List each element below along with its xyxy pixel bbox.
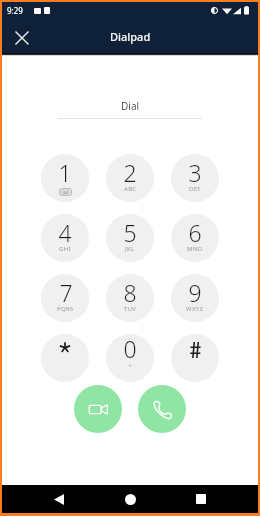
staticText: WXYZ — [186, 305, 204, 313]
staticText: GHI — [59, 245, 71, 253]
staticText: TUV — [124, 305, 137, 313]
staticText: 7 — [59, 277, 73, 308]
staticText: 1 — [58, 157, 72, 188]
button[interactable]: 2 — [106, 154, 154, 202]
staticText: 0 — [123, 334, 137, 364]
staticText: ABC — [124, 185, 137, 193]
button[interactable]: Close — [5, 21, 39, 55]
button[interactable]: Video call — [74, 385, 122, 433]
button[interactable]: 3 — [171, 154, 219, 202]
button[interactable]: 0 — [106, 334, 154, 382]
button[interactable]: 1 — [41, 154, 89, 202]
staticText: Dialpad — [110, 29, 151, 44]
button[interactable]: Home — [116, 485, 144, 513]
button[interactable]: 4 — [41, 214, 89, 262]
staticText: 2 — [123, 157, 137, 188]
button[interactable] — [171, 334, 219, 382]
staticText: DEF — [189, 185, 201, 193]
staticText: PQRS — [57, 305, 74, 313]
staticText: Dial — [121, 99, 140, 113]
staticText: 6 — [188, 217, 202, 248]
button[interactable]: Dial — [58, 90, 202, 118]
staticText: 3 — [188, 157, 202, 188]
button[interactable]: 8 — [106, 274, 154, 322]
button[interactable]: Back — [45, 485, 73, 513]
staticText: 4 — [58, 217, 72, 248]
button[interactable] — [41, 334, 89, 382]
button[interactable]: Call — [138, 385, 186, 433]
button[interactable]: Recent apps — [187, 485, 215, 513]
staticText: 9:29 — [7, 5, 23, 16]
button[interactable]: 7 — [41, 274, 89, 322]
staticText: + — [128, 361, 133, 371]
button[interactable]: 6 — [171, 214, 219, 262]
button[interactable]: 5 — [106, 214, 154, 262]
staticText: 5 — [123, 217, 137, 248]
button[interactable]: 9 — [171, 274, 219, 322]
staticText: 9 — [188, 277, 202, 308]
staticText: MNO — [187, 245, 203, 253]
staticText: JKL — [125, 245, 135, 253]
staticText: 8 — [123, 277, 137, 308]
